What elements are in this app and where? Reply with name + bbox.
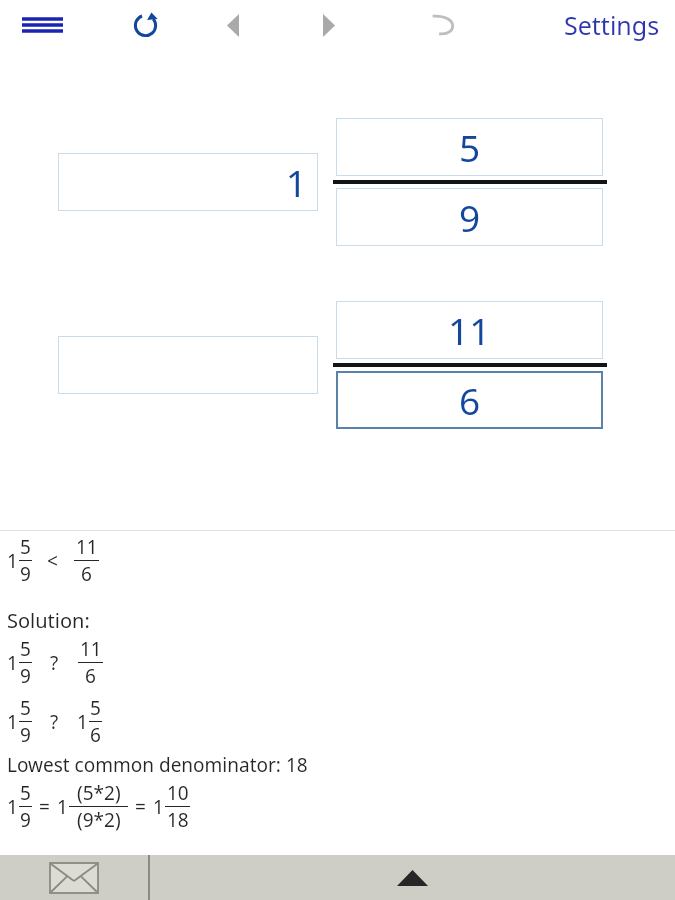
staticText: 1 bbox=[7, 794, 18, 820]
staticText: = bbox=[39, 794, 50, 820]
button[interactable]: 5 bbox=[336, 118, 603, 176]
staticText: 9 bbox=[20, 561, 31, 587]
staticText: 1 bbox=[285, 157, 307, 207]
staticText: 6 bbox=[81, 561, 92, 587]
staticText: 1 bbox=[57, 794, 68, 820]
button[interactable]: Refresh bbox=[116, 3, 174, 47]
button[interactable]: 11 bbox=[336, 301, 603, 359]
staticText: = bbox=[135, 794, 146, 820]
staticText: 11 bbox=[448, 305, 491, 355]
staticText: 1 bbox=[77, 709, 88, 735]
staticText: 11 bbox=[76, 534, 98, 560]
staticText: 9 bbox=[20, 807, 31, 833]
staticText: ? bbox=[50, 709, 59, 735]
staticText: 1 bbox=[153, 794, 164, 820]
button[interactable]: Previous bbox=[206, 3, 260, 47]
staticText: 1 bbox=[7, 709, 18, 735]
staticText: Settings bbox=[564, 8, 660, 42]
staticText: 9 bbox=[20, 663, 31, 689]
staticText: 6 bbox=[459, 375, 481, 425]
staticText: 1 bbox=[7, 650, 18, 676]
button[interactable]: Settings bbox=[556, 2, 668, 48]
staticText: (9*2) bbox=[77, 807, 121, 833]
button[interactable]: Email bbox=[0, 855, 148, 900]
button[interactable]: 6 bbox=[336, 371, 603, 429]
button[interactable]: Menu bbox=[8, 4, 76, 46]
staticText: 9 bbox=[20, 722, 31, 748]
staticText: 18 bbox=[167, 807, 189, 833]
staticText: 5 bbox=[90, 695, 101, 721]
staticText: 1 bbox=[7, 548, 18, 574]
staticText: 6 bbox=[85, 663, 96, 689]
button[interactable]: Next bbox=[302, 3, 356, 47]
staticText: Solution: bbox=[7, 607, 90, 634]
button[interactable] bbox=[58, 336, 318, 394]
staticText: 6 bbox=[90, 722, 101, 748]
button[interactable]: 1 bbox=[58, 153, 318, 211]
button[interactable]: Undo bbox=[416, 3, 472, 47]
staticText: ? bbox=[50, 650, 59, 676]
staticText: 11 bbox=[80, 636, 102, 662]
staticText: 5 bbox=[20, 780, 31, 806]
staticText: (5*2) bbox=[77, 780, 121, 806]
staticText: Lowest common denominator: 18 bbox=[7, 752, 308, 778]
staticText: 9 bbox=[459, 192, 481, 242]
staticText: 5 bbox=[459, 122, 481, 172]
button[interactable]: 9 bbox=[336, 188, 603, 246]
staticText: 5 bbox=[20, 695, 31, 721]
staticText: 5 bbox=[20, 534, 31, 560]
button[interactable] bbox=[150, 855, 675, 900]
staticText: 5 bbox=[20, 636, 31, 662]
staticText: < bbox=[47, 548, 58, 574]
staticText: 10 bbox=[167, 780, 189, 806]
